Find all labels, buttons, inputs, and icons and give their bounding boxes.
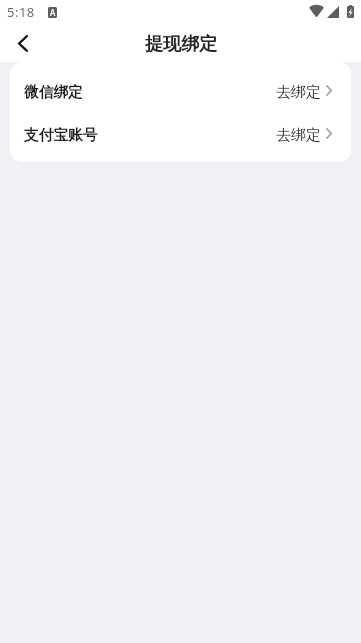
staticText: 提现绑定 [145,33,217,56]
button[interactable]: 微信绑定 [10,71,351,114]
button[interactable]: 支付宝账号 [10,114,351,157]
staticText: 支付宝账号 [24,126,98,145]
staticText: 去绑定 [276,126,321,145]
staticText: A [50,7,56,18]
staticText: 微信绑定 [24,83,83,102]
staticText: 5:18 [7,3,35,21]
staticText: 去绑定 [276,83,321,102]
button[interactable]: Back [0,25,40,62]
